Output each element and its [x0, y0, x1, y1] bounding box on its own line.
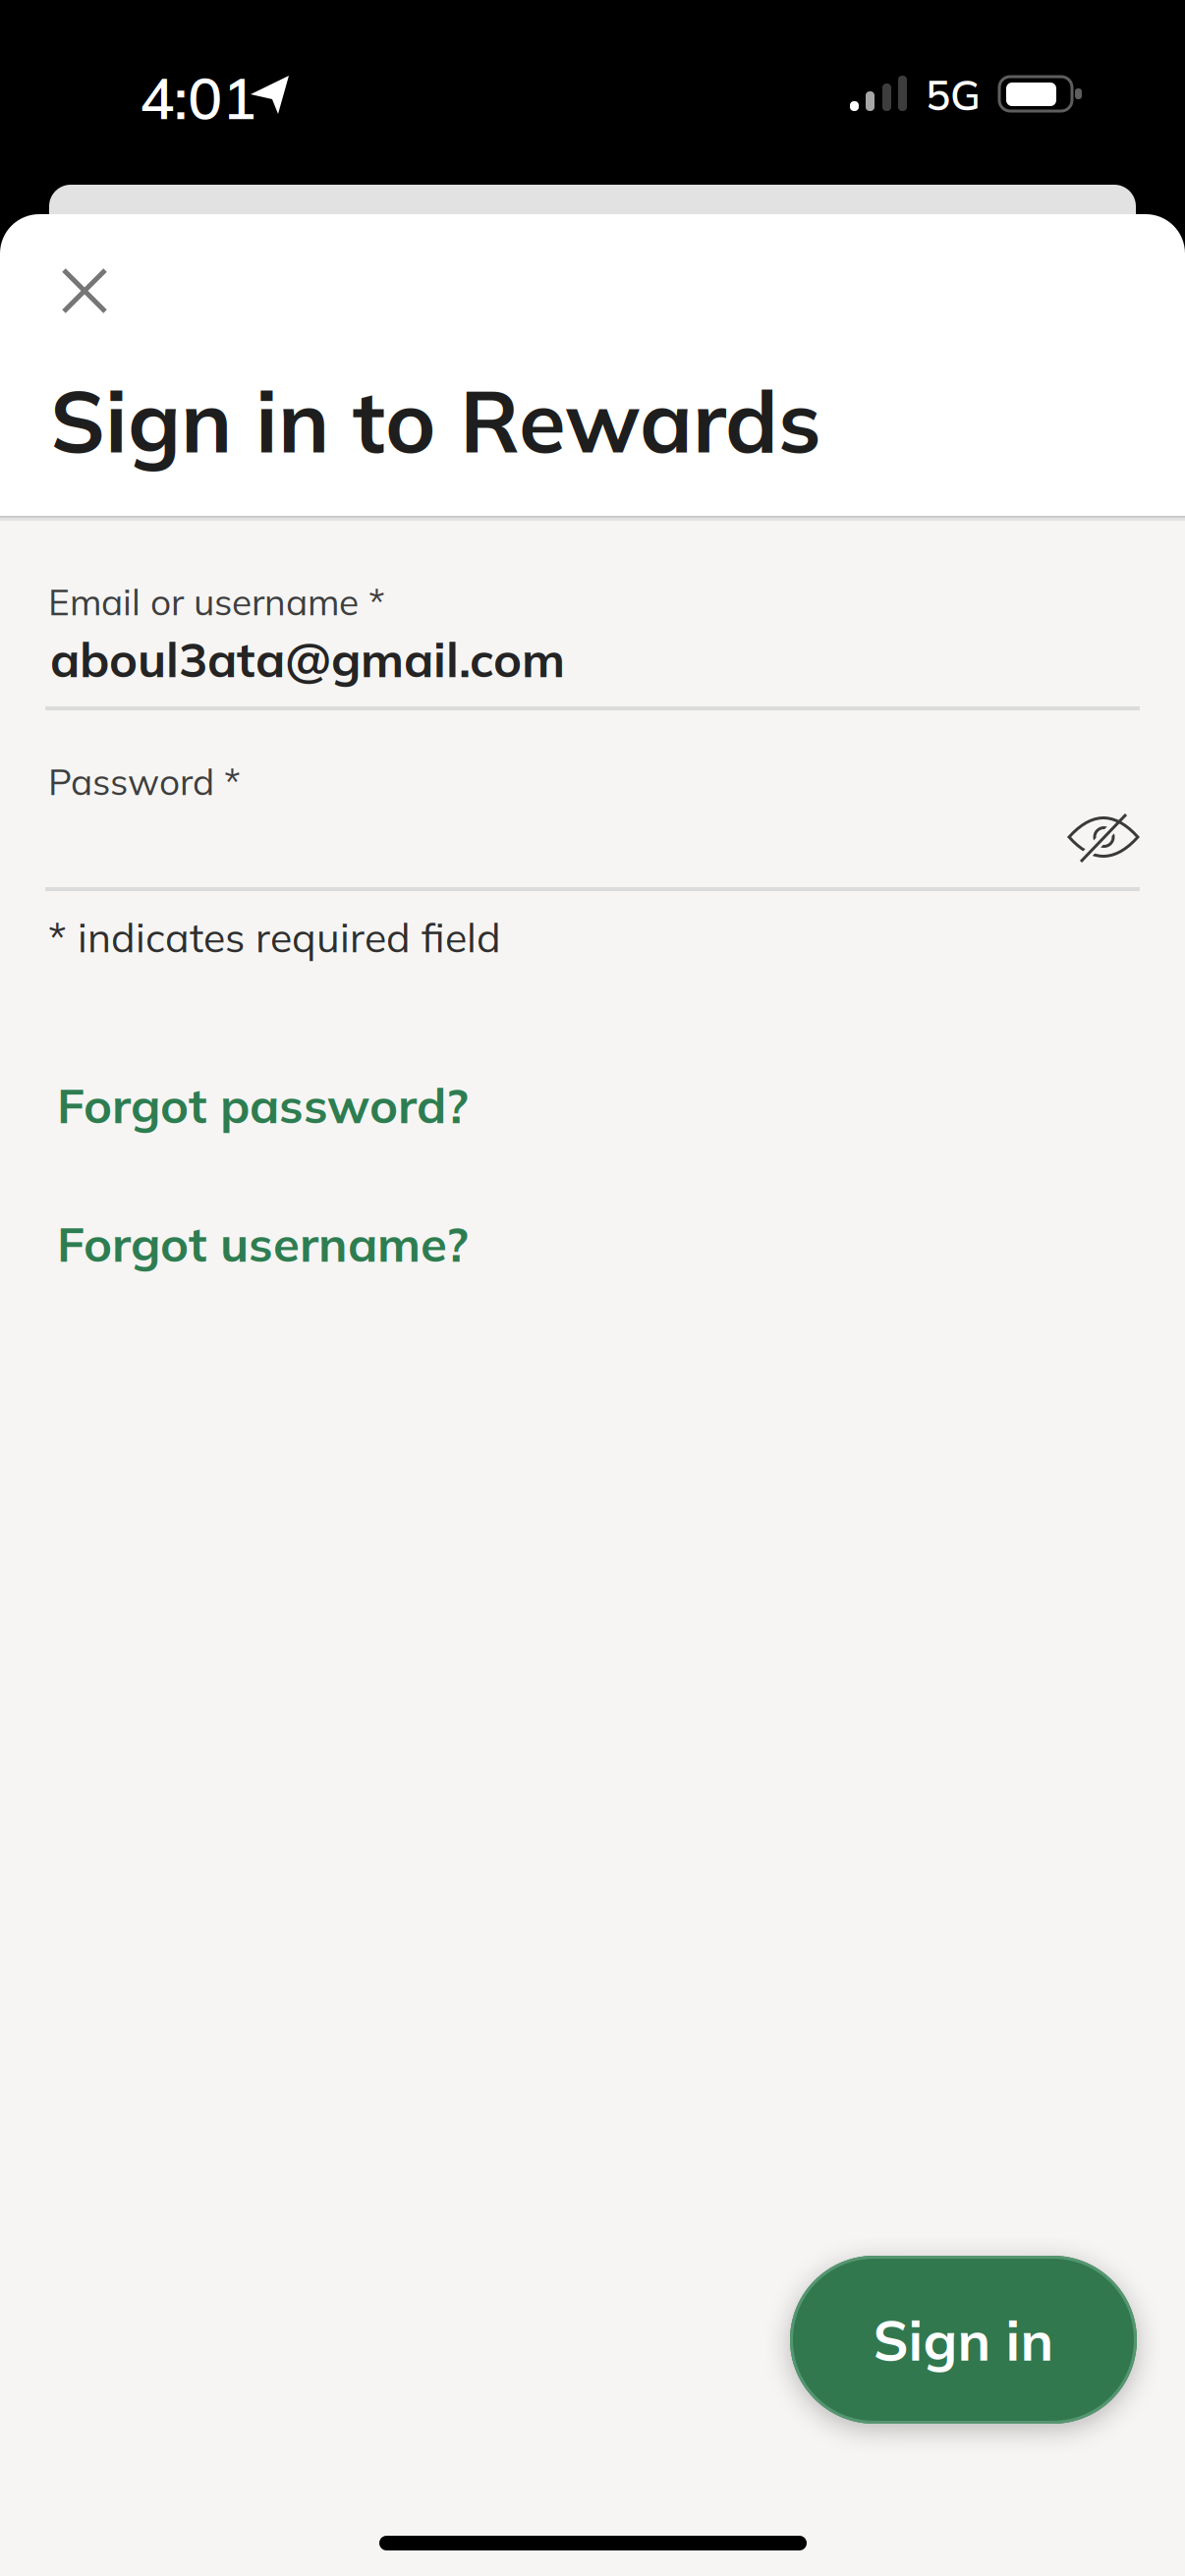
- button[interactable]: Show password: [1067, 808, 1140, 868]
- button[interactable]: Forgot password?: [57, 1075, 469, 1135]
- staticText: * indicates required field: [48, 912, 501, 962]
- staticText: Forgot password?: [57, 1075, 469, 1135]
- staticText: 5G: [926, 69, 981, 121]
- staticText: Sign in: [873, 2305, 1054, 2374]
- button[interactable]: Forgot username?: [57, 1213, 469, 1274]
- staticText: Forgot username?: [57, 1213, 469, 1274]
- staticText: Sign in to Rewards: [50, 366, 821, 474]
- staticText: Email or username *: [48, 579, 385, 624]
- staticText: Password *: [48, 758, 241, 804]
- button[interactable]: Close: [42, 249, 127, 333]
- staticText: aboul3ata@gmail.com: [50, 629, 565, 689]
- button[interactable]: Sign in: [790, 2256, 1137, 2424]
- staticText: 4:01: [140, 61, 256, 134]
